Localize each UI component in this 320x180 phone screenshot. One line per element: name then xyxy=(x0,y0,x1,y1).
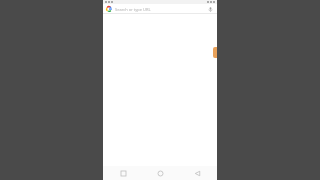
button[interactable]: Recent apps xyxy=(117,167,129,179)
button[interactable]: Back xyxy=(191,167,203,179)
button[interactable]: Voice search xyxy=(206,5,214,13)
button[interactable]: Search or type URL xyxy=(106,4,214,14)
button[interactable]: Open panel xyxy=(213,47,217,58)
staticText: Search or type URL xyxy=(115,7,151,12)
button[interactable]: Home xyxy=(154,167,166,179)
